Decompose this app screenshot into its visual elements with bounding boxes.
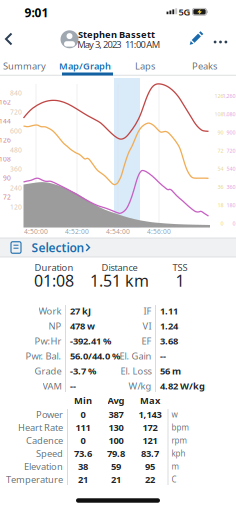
staticText: 4:52:00	[65, 227, 89, 236]
button[interactable]: More	[209, 33, 231, 51]
staticText: 1,080	[222, 111, 235, 118]
staticText: Avg	[107, 394, 124, 407]
staticText: 720	[226, 147, 235, 154]
staticText: 4:50:00	[24, 227, 48, 236]
staticText: 21	[78, 473, 88, 486]
staticText: Grade	[34, 365, 61, 377]
staticText: -3.7 %	[70, 365, 96, 377]
staticText: El. Loss	[120, 365, 151, 377]
button[interactable]: Summary	[0, 57, 50, 75]
button[interactable]: Edit	[185, 29, 207, 49]
button[interactable]: Peaks	[181, 57, 227, 75]
staticText: Peaks	[192, 60, 217, 72]
staticText: 0	[220, 220, 223, 227]
staticText: 9:01	[24, 4, 48, 20]
staticText: 56.0/44.0 %	[70, 350, 120, 362]
staticText: 83.7	[141, 447, 159, 460]
staticText: 22	[145, 473, 155, 486]
staticText: May 3, 2023 11:00 AM	[77, 38, 160, 51]
staticText: 90	[3, 174, 11, 182]
staticText: kph	[171, 448, 185, 459]
staticText: 144	[0, 117, 11, 125]
staticText: 1,260	[222, 92, 235, 100]
staticText: 130	[108, 421, 123, 434]
staticText: --	[160, 350, 166, 362]
staticText: 840	[10, 89, 22, 97]
button[interactable]: Selection	[0, 238, 236, 257]
staticText: -392.41 %	[70, 335, 111, 347]
staticText: 90	[217, 129, 223, 136]
staticText: IF	[143, 305, 151, 317]
staticText: 387	[108, 408, 123, 421]
staticText: 18	[217, 202, 223, 209]
staticText: 172	[142, 421, 157, 434]
staticText: 108	[0, 155, 11, 163]
staticText: Max	[140, 394, 160, 407]
staticText: Pw:Hr	[34, 335, 61, 347]
staticText: 4:56:00	[147, 227, 171, 236]
staticText: 72	[3, 193, 11, 201]
staticText: 900	[226, 129, 235, 136]
staticText: VI	[142, 320, 151, 332]
staticText: bpm	[171, 422, 188, 433]
staticText: 600	[10, 127, 22, 135]
staticText: Laps	[135, 60, 155, 72]
staticText: 72	[217, 147, 223, 154]
staticText: 38	[78, 460, 88, 473]
staticText: 27 kJ	[70, 305, 91, 317]
staticText: Pwr. Bal.	[25, 350, 61, 362]
staticText: NP	[48, 320, 61, 332]
staticText: 360	[226, 183, 235, 191]
staticText: m	[171, 461, 178, 472]
staticText: 59	[111, 460, 121, 473]
staticText: TSS	[172, 261, 187, 274]
staticText: 01:08	[34, 270, 74, 291]
staticText: 100	[108, 434, 123, 447]
staticText: Cadence	[26, 434, 63, 447]
staticText: 0	[80, 434, 85, 447]
staticText: VAM	[42, 380, 61, 392]
staticText: 540	[226, 165, 235, 172]
staticText: 73.6	[74, 447, 92, 460]
staticText: Summary	[3, 60, 46, 72]
staticText: 79.8	[107, 447, 125, 460]
staticText: C	[171, 474, 176, 485]
staticText: Distance	[101, 261, 137, 274]
staticText: 108	[214, 111, 223, 118]
staticText: Duration	[34, 261, 73, 274]
staticText: 111	[75, 421, 90, 434]
staticText: 478 w	[70, 320, 95, 332]
staticText: Selection	[31, 239, 84, 255]
staticText: rpm	[171, 435, 186, 446]
staticText: Power	[36, 408, 63, 421]
staticText: 1.11	[160, 305, 178, 317]
button[interactable]: Laps	[122, 57, 168, 75]
staticText: 1.24	[160, 320, 178, 332]
staticText: 95	[145, 460, 155, 473]
staticText: 4.82 W/kg	[160, 380, 205, 392]
staticText: 180	[226, 202, 235, 209]
button[interactable]: Map/Graph	[58, 57, 112, 75]
staticText: 126	[0, 136, 11, 144]
staticText: 21	[111, 473, 121, 486]
staticText: 360	[10, 165, 22, 173]
staticText: 720	[10, 108, 22, 116]
staticText: EF	[141, 335, 151, 347]
staticText: Heart Rate	[18, 421, 63, 434]
staticText: W/kg	[128, 380, 151, 392]
staticText: Min	[74, 394, 92, 407]
staticText: Stephen Bassett	[78, 28, 155, 41]
staticText: 4:54:00	[106, 227, 130, 236]
staticText: 0	[80, 408, 85, 421]
staticText: --	[70, 380, 76, 392]
staticText: w	[171, 409, 177, 420]
staticText: 5G	[178, 6, 190, 18]
staticText: Elevation	[24, 460, 63, 473]
staticText: Speed	[36, 447, 63, 460]
staticText: 240	[10, 184, 22, 192]
staticText: El. Gain	[119, 350, 151, 362]
staticText: 0	[232, 220, 235, 227]
staticText: 36	[217, 183, 223, 191]
staticText: 1	[175, 270, 184, 291]
